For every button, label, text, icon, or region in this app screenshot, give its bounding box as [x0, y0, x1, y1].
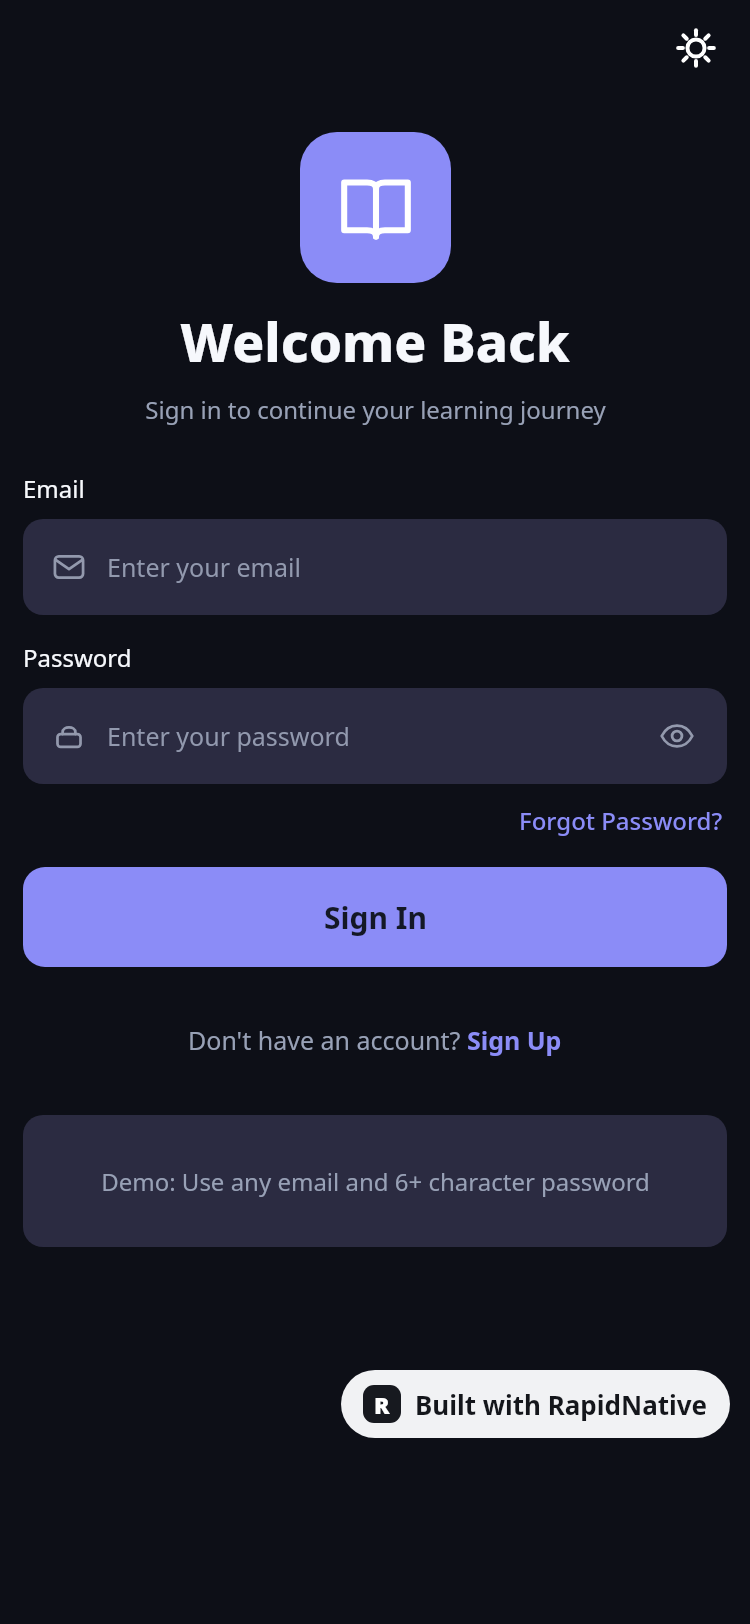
staticText: R — [374, 1389, 390, 1420]
button[interactable]: Show password — [651, 710, 703, 762]
staticText: Sign In — [324, 897, 427, 938]
button[interactable]: Enter your email — [23, 519, 727, 615]
staticText: Sign in to continue your learning journe… — [145, 393, 606, 426]
staticText: Demo: Use any email and 6+ character pas… — [101, 1165, 650, 1198]
button[interactable]: R — [341, 1370, 730, 1438]
staticText: Enter your password — [107, 719, 651, 753]
staticText: Enter your email — [107, 550, 301, 584]
staticText: Email — [23, 472, 85, 505]
button[interactable]: Toggle light theme — [664, 16, 728, 80]
staticText: Forgot Password? — [519, 804, 723, 837]
button[interactable]: Don't have an account? Sign Up — [182, 1017, 568, 1063]
staticText: Password — [23, 641, 132, 674]
staticText: Built with RapidNative — [415, 1387, 708, 1422]
staticText: Don't have an account? Sign Up — [188, 1023, 562, 1057]
staticText: Welcome Back — [180, 305, 570, 377]
button[interactable]: Sign In — [23, 867, 727, 967]
button[interactable]: Enter your password — [23, 688, 727, 784]
button[interactable]: Forgot Password? — [515, 798, 727, 843]
